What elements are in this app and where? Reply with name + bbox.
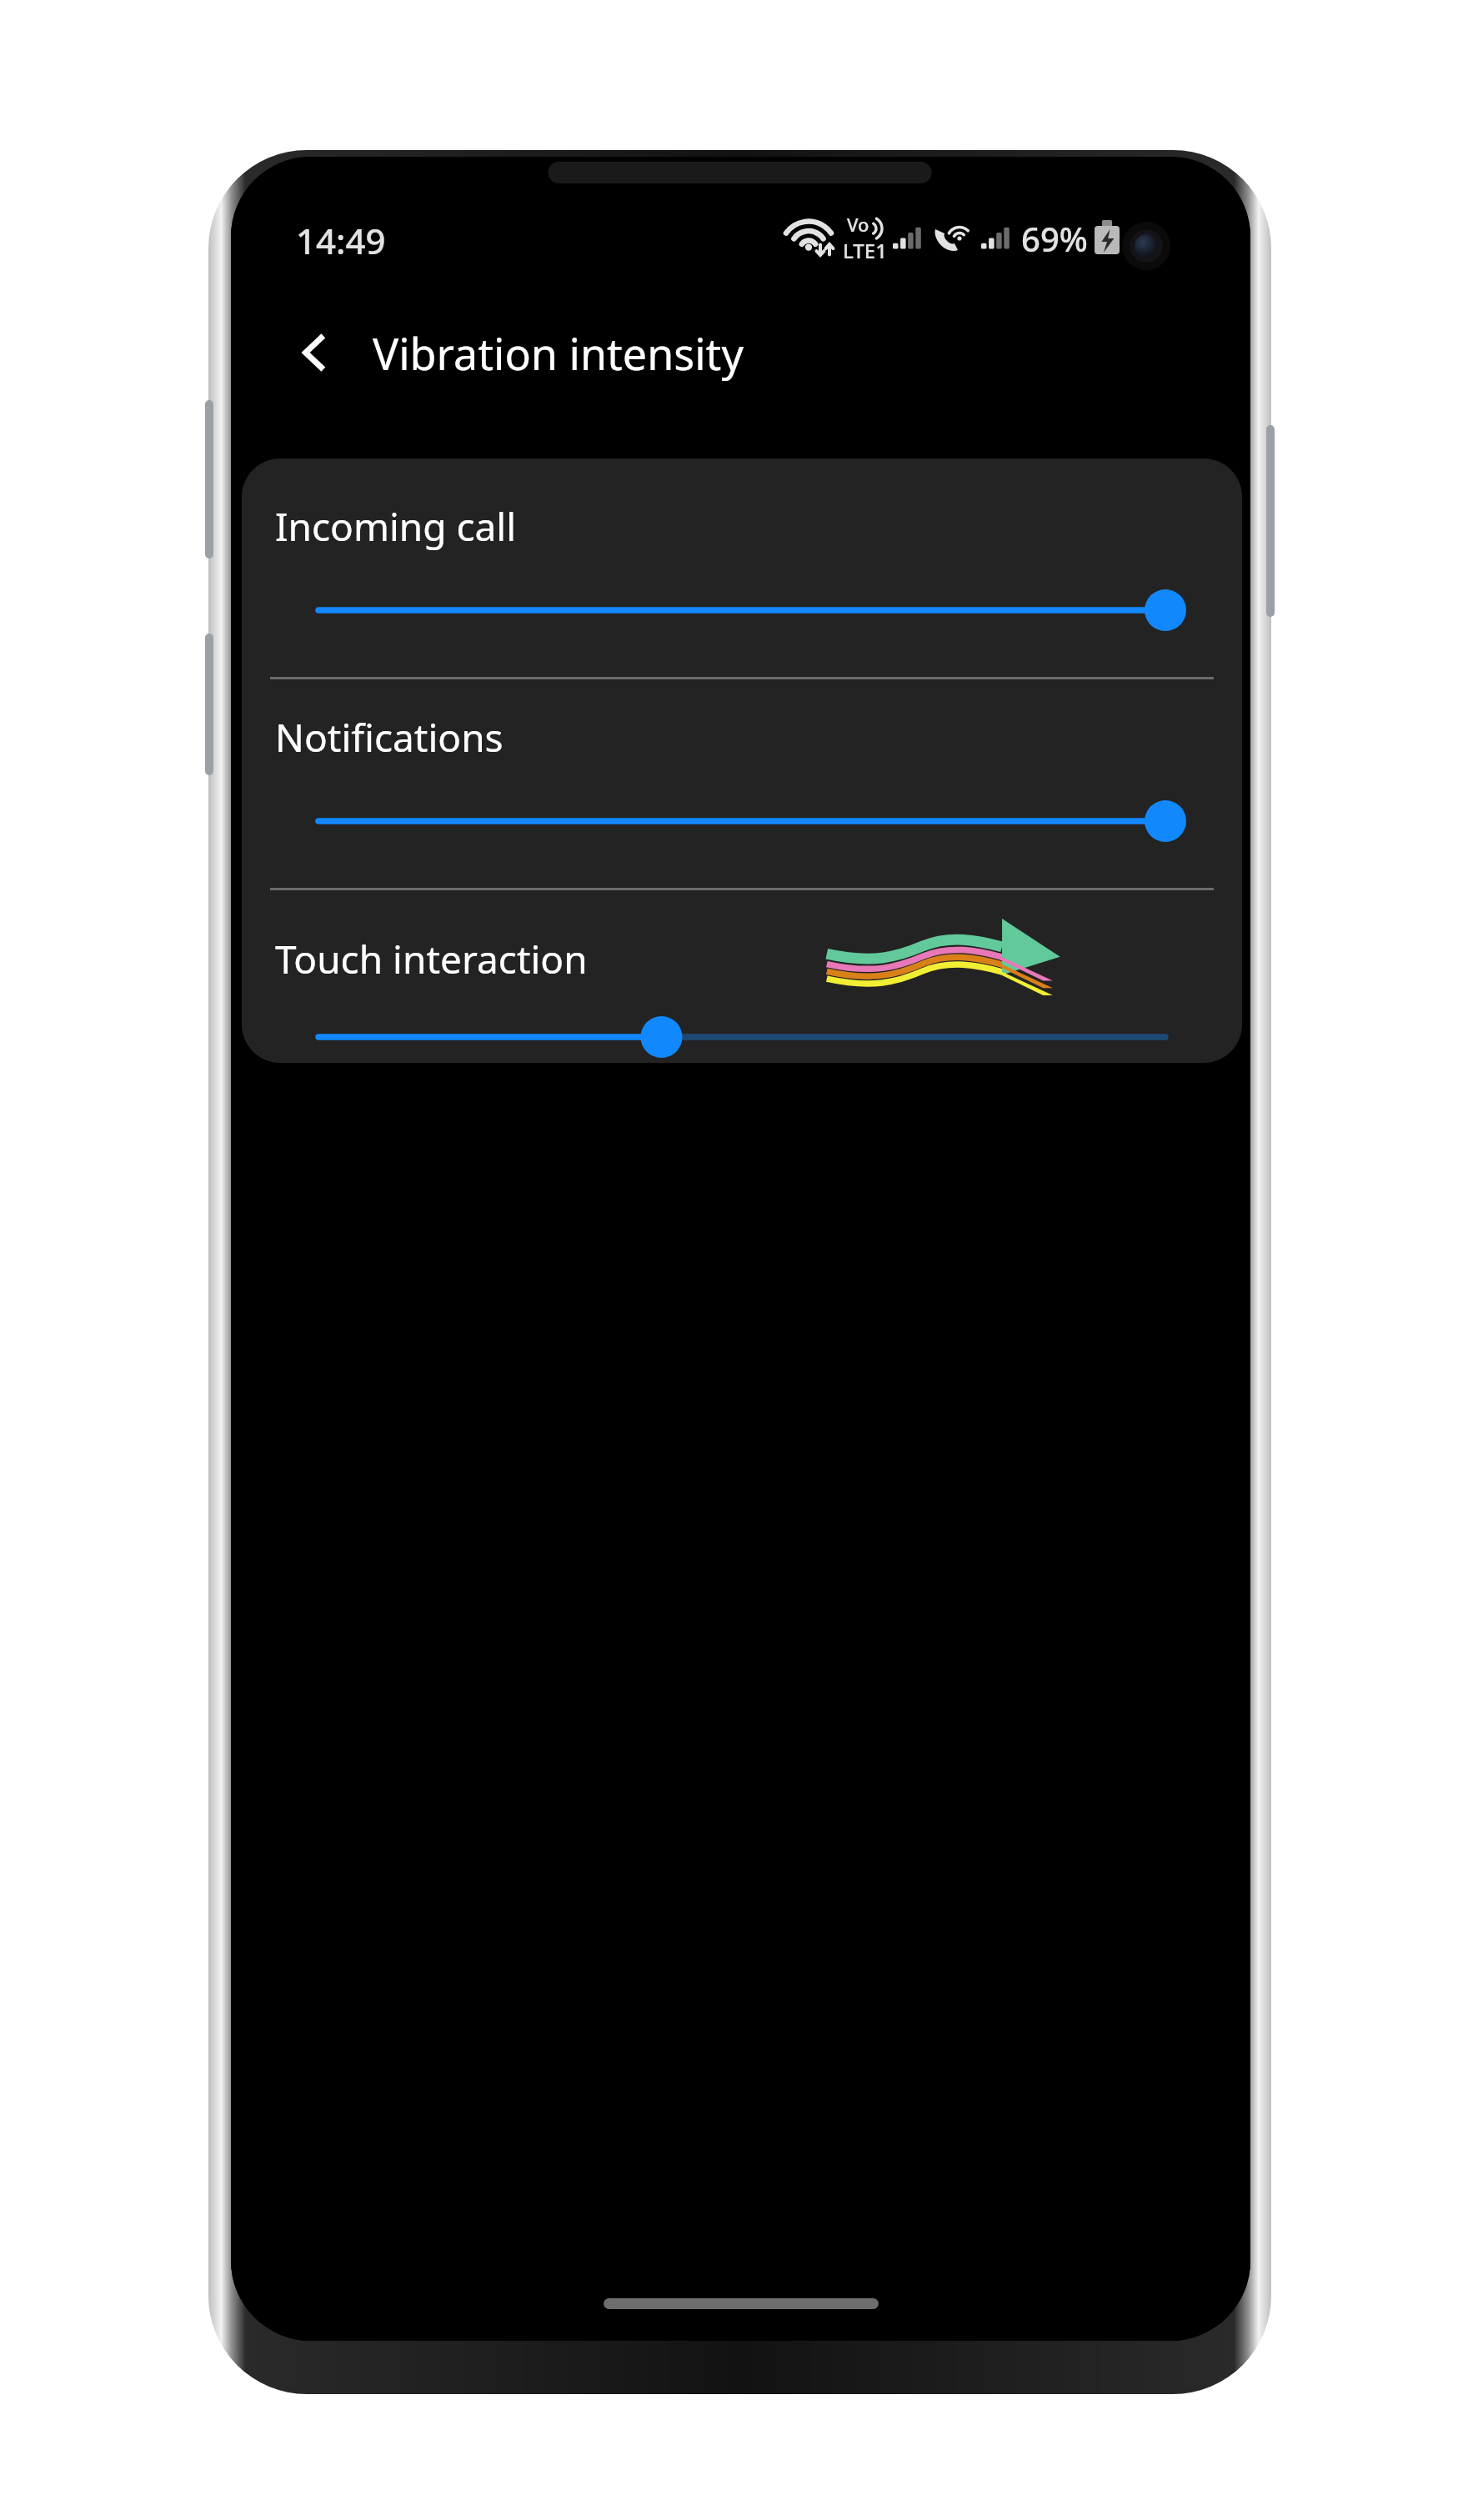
button[interactable]: Touch interaction <box>242 890 1242 1063</box>
button[interactable]: Incoming call <box>242 458 1242 677</box>
button[interactable]: Intensity slider <box>318 587 1165 634</box>
staticText: Incoming call <box>275 500 517 552</box>
staticText: Vibration intensity <box>373 323 744 383</box>
staticText: LTE1 <box>843 237 887 264</box>
button[interactable]: Back <box>274 313 354 393</box>
button[interactable]: Intensity slider <box>318 798 1165 844</box>
staticText: Vo <box>847 212 869 237</box>
staticText: Touch interaction <box>275 933 588 985</box>
staticText: 69% <box>1021 216 1088 261</box>
button[interactable]: Intensity slider <box>318 1014 1165 1060</box>
staticText: 14:49 <box>296 217 386 264</box>
other: Haptic feedback preview <box>822 922 1064 995</box>
staticText: Notifications <box>275 711 504 763</box>
button[interactable]: Notifications <box>242 679 1242 888</box>
